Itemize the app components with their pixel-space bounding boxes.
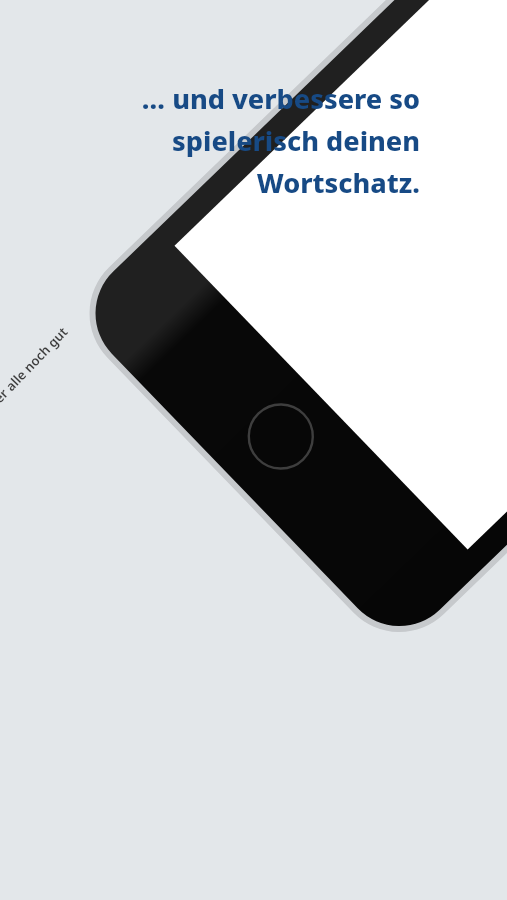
staticText: …d zwar alt, aber alle noch gut bbox=[0, 322, 72, 475]
button[interactable]: …d zwar alt, aber alle noch gut bbox=[0, 322, 72, 475]
button[interactable]: … und verbessere so spielerisch deinen W… bbox=[24, 80, 420, 201]
